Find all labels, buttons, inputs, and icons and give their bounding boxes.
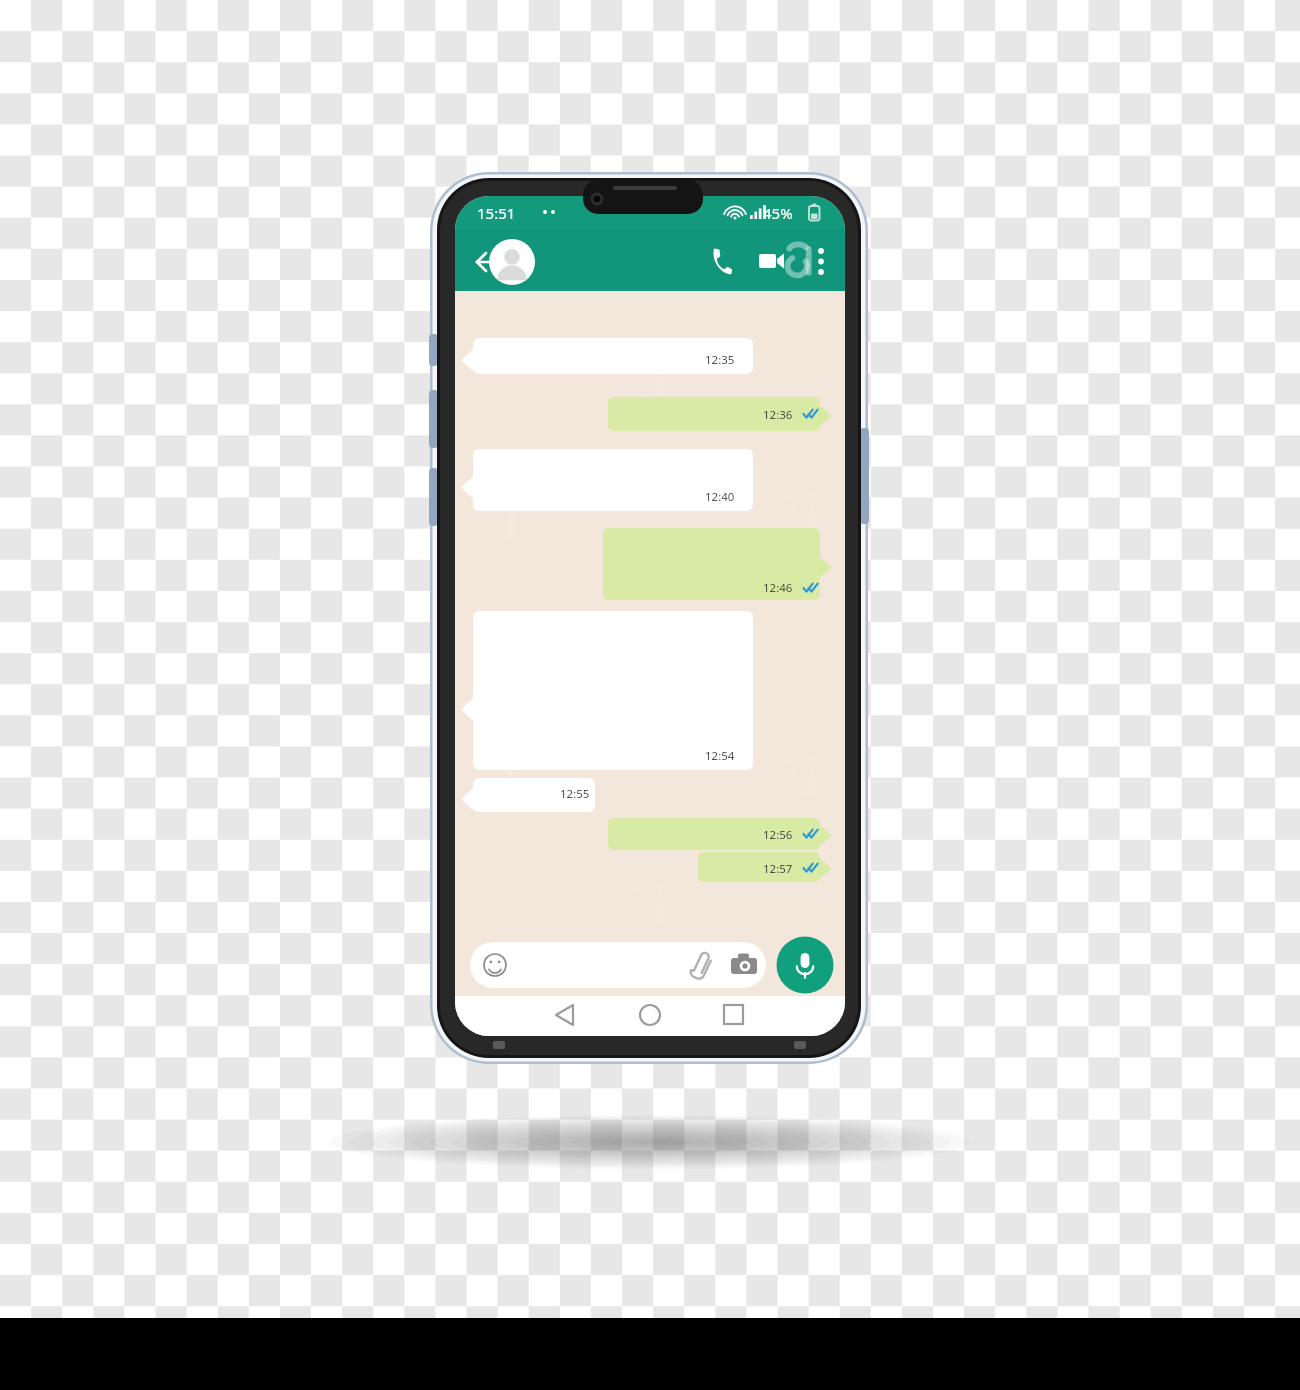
button[interactable]: Back	[467, 247, 509, 285]
staticText: 12:55	[560, 786, 590, 802]
button[interactable]: Message input field	[470, 941, 768, 989]
staticText: 45%	[763, 203, 793, 223]
button[interactable]: Record voice message	[777, 937, 835, 995]
staticText: 15:51	[477, 203, 516, 223]
button[interactable]: Home	[623, 996, 677, 1034]
staticText: 12:36	[763, 407, 793, 423]
staticText: 12:46	[763, 580, 793, 596]
staticText: 12:56	[763, 827, 793, 843]
button[interactable]: Voice call	[700, 243, 744, 287]
staticText: 12:54	[705, 748, 735, 764]
staticText: 12:40	[705, 489, 735, 505]
button[interactable]: Back	[538, 996, 592, 1034]
button[interactable]: Recent apps	[707, 996, 761, 1034]
staticText: 12:57	[763, 861, 793, 877]
button[interactable]: Video call	[748, 243, 798, 287]
staticText: 12:35	[705, 352, 735, 368]
button[interactable]: More options	[804, 241, 838, 287]
button[interactable]: Contact profile photo	[488, 241, 536, 289]
